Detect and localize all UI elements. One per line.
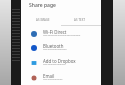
staticText: AS IMAGE — [36, 18, 50, 22]
staticText: com.android.email — [43, 78, 63, 81]
staticText: com.dropbox.android — [43, 63, 66, 66]
button[interactable]: Add to Dropbox — [21, 56, 101, 71]
staticText: Share page — [29, 2, 56, 9]
staticText: Add to Dropbox — [43, 58, 76, 64]
staticText: Email — [43, 73, 55, 79]
button[interactable]: Email — [21, 71, 101, 85]
button[interactable]: AS IMAGE — [24, 14, 61, 25]
staticText: com.android.bluetooth — [43, 48, 67, 51]
button[interactable]: AS TEXT — [61, 14, 98, 25]
staticText: Bluetooth — [43, 43, 64, 49]
button[interactable]: Wi-Fi Direct — [21, 27, 101, 42]
staticText: com.samsung.android.app.Fileshare — [43, 34, 81, 37]
staticText: Wi-Fi Direct — [43, 29, 67, 35]
staticText: AS TEXT — [74, 18, 86, 22]
button[interactable]: Bluetooth — [21, 41, 101, 56]
